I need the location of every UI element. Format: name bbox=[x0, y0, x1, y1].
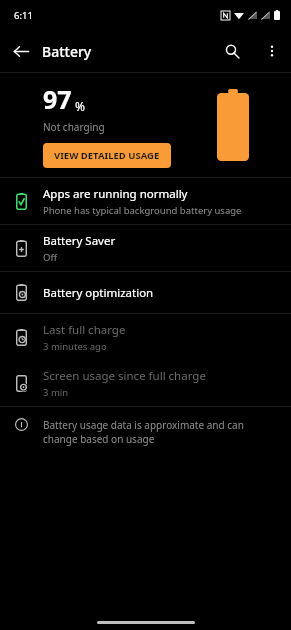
staticText: Battery Saver bbox=[43, 233, 116, 249]
button[interactable]: More options bbox=[253, 32, 291, 70]
staticText: Battery optimization bbox=[43, 285, 154, 301]
staticText: Apps are running normally bbox=[43, 186, 188, 202]
staticText: VIEW DETAILED USAGE bbox=[54, 149, 160, 162]
staticText: Battery bbox=[42, 42, 92, 61]
staticText: 3 minutes ago bbox=[43, 340, 107, 353]
button[interactable]: Apps are running normally bbox=[0, 178, 291, 224]
button[interactable]: Screen usage since full charge bbox=[0, 360, 291, 406]
staticText: Off bbox=[43, 251, 57, 264]
button[interactable]: VIEW DETAILED USAGE bbox=[43, 143, 171, 168]
button[interactable]: Battery Saver bbox=[0, 225, 291, 271]
button[interactable]: Search bbox=[211, 30, 253, 72]
staticText: 6:11 bbox=[14, 9, 33, 22]
staticText: Battery usage data is approximate and ca… bbox=[43, 418, 273, 446]
staticText: 3 min bbox=[43, 386, 69, 399]
button[interactable]: Battery optimization bbox=[0, 272, 291, 313]
staticText: Phone has typical background battery usa… bbox=[43, 204, 242, 217]
staticText: 97 bbox=[43, 82, 72, 116]
button[interactable]: Last full charge bbox=[0, 314, 291, 360]
staticText: Not charging bbox=[43, 120, 105, 134]
staticText: % bbox=[75, 98, 85, 114]
staticText: Screen usage since full charge bbox=[43, 368, 206, 384]
button[interactable]: Back bbox=[0, 30, 42, 72]
staticText: Last full charge bbox=[43, 322, 126, 338]
